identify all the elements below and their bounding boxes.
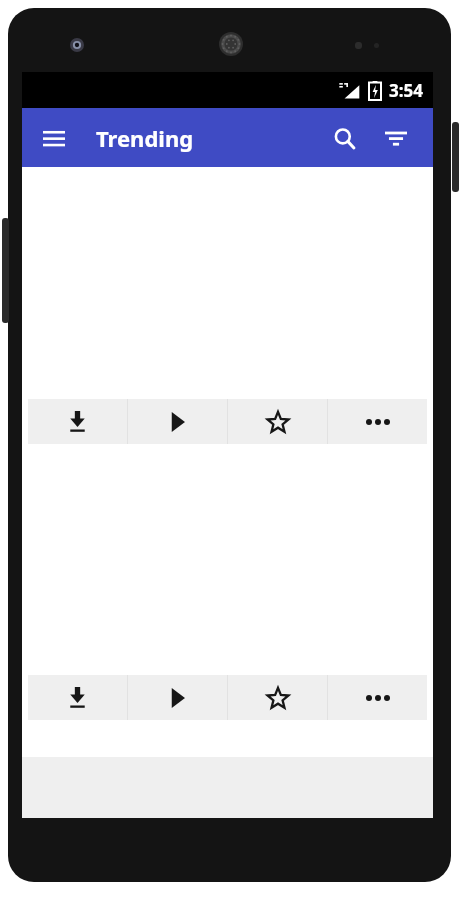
button[interactable]: More options	[328, 399, 427, 444]
button[interactable]: Play	[128, 399, 227, 444]
button[interactable]: Play	[128, 675, 227, 720]
button[interactable]: Filter	[373, 115, 419, 161]
button[interactable]: Open navigation drawer	[34, 118, 74, 158]
button[interactable]: More options	[328, 675, 427, 720]
button[interactable]: Favorite	[228, 399, 327, 444]
button[interactable]: Download	[28, 675, 127, 720]
button[interactable]: Search	[321, 115, 367, 161]
staticText: Trending	[96, 123, 194, 153]
button[interactable]: Favorite	[228, 675, 327, 720]
staticText: 3:54	[389, 79, 423, 102]
button[interactable]: Download	[28, 399, 127, 444]
